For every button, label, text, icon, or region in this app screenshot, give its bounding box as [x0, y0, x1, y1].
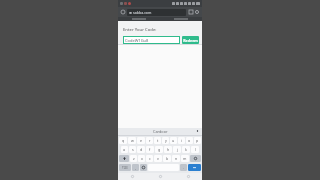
button[interactable]: d	[137, 146, 145, 153]
button[interactable]: u	[170, 137, 177, 144]
staticText: b	[166, 156, 169, 161]
staticText: r	[149, 138, 151, 143]
button[interactable]: m	[181, 155, 189, 162]
staticText: l	[195, 147, 196, 152]
staticText: j	[177, 147, 178, 152]
staticText: CodeW1Gu8	[125, 38, 149, 43]
staticText: Cardoor	[153, 129, 168, 134]
staticText: w	[131, 138, 134, 143]
staticText: s	[132, 147, 134, 152]
button[interactable]: i	[178, 137, 185, 144]
button[interactable]: k	[182, 146, 190, 153]
button[interactable]: ,	[132, 164, 139, 171]
staticText: .	[183, 166, 184, 170]
button[interactable]: r	[146, 137, 153, 144]
staticText: q	[122, 138, 125, 143]
staticText: y	[165, 138, 167, 143]
button[interactable]: y	[162, 137, 169, 144]
button[interactable]: a	[121, 146, 128, 153]
staticText: h	[167, 147, 170, 152]
button[interactable]: .	[180, 164, 187, 171]
button[interactable]: h	[164, 146, 172, 153]
staticText: Redeem	[183, 38, 198, 43]
button[interactable]: CodeW1Gu8	[123, 36, 180, 44]
button[interactable]: ?123	[119, 164, 131, 171]
staticText: o	[188, 138, 191, 143]
button[interactable]: Backspace	[190, 155, 201, 162]
button[interactable]: Redeem	[182, 36, 199, 44]
button[interactable]: p	[194, 137, 201, 144]
button[interactable]: e	[137, 137, 145, 144]
staticText: Enter Your Code:	[123, 27, 157, 33]
button[interactable]: Voice input	[195, 129, 200, 134]
button[interactable]: Back	[118, 173, 146, 180]
button[interactable]: v	[154, 155, 162, 162]
staticText: k	[185, 147, 187, 152]
button[interactable]: w	[128, 137, 136, 144]
button[interactable]	[160, 17, 202, 21]
button[interactable]: l	[191, 146, 199, 153]
staticText: g	[158, 147, 161, 152]
button[interactable]: s	[129, 146, 136, 153]
staticText: f	[149, 147, 151, 152]
staticText: a	[123, 147, 126, 152]
button[interactable]: x	[138, 155, 145, 162]
button[interactable]: Enter	[188, 164, 201, 171]
button[interactable]: Shift	[119, 155, 129, 162]
staticText: i	[181, 138, 182, 143]
button[interactable]: b	[163, 155, 171, 162]
button[interactable]: Emoji	[140, 164, 147, 171]
staticText: ,	[135, 166, 136, 170]
button[interactable]: t	[154, 137, 161, 144]
staticText: e	[140, 138, 143, 143]
staticText: ?123	[122, 166, 128, 170]
staticText: sabba.com	[133, 10, 152, 15]
staticText: c	[149, 156, 151, 161]
staticText: d	[140, 147, 143, 152]
button[interactable]: f	[146, 146, 154, 153]
button[interactable]: o	[186, 137, 193, 144]
button[interactable]: sabba.com	[127, 9, 186, 16]
staticText: z	[133, 156, 135, 161]
button[interactable]: j	[173, 146, 181, 153]
button[interactable]: c	[146, 155, 153, 162]
staticText: n	[175, 156, 178, 161]
button[interactable]: n	[172, 155, 180, 162]
button[interactable]: Tabs	[188, 9, 194, 15]
staticText: u	[172, 138, 175, 143]
staticText: p	[196, 138, 199, 143]
button[interactable]: Home	[146, 173, 174, 180]
button[interactable]: Recents	[174, 173, 202, 180]
staticText: m	[183, 156, 187, 161]
staticText: t	[157, 138, 159, 143]
button[interactable]	[118, 17, 160, 21]
staticText: x	[141, 156, 143, 161]
button[interactable]: g	[155, 146, 163, 153]
staticText: v	[157, 156, 159, 161]
button[interactable]: Home	[120, 9, 126, 15]
button[interactable]: More options	[194, 9, 200, 15]
button[interactable]: q	[119, 137, 127, 144]
button[interactable]: z	[130, 155, 137, 162]
